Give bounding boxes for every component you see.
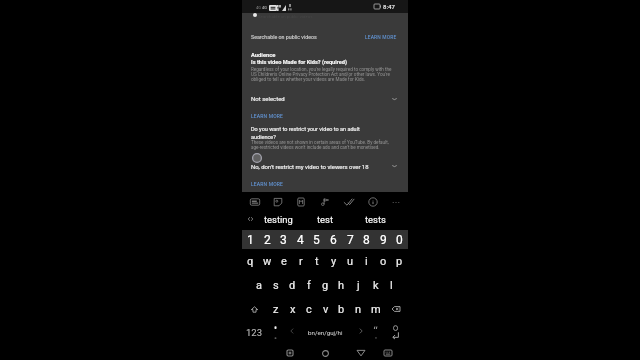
button[interactable]: t <box>308 250 325 272</box>
button[interactable]: r <box>292 250 309 272</box>
staticText: f <box>307 279 311 292</box>
button[interactable]: 6 <box>325 230 342 249</box>
staticText: g <box>322 279 329 292</box>
staticText: l <box>390 279 393 292</box>
button[interactable]: Grammar check <box>341 194 357 210</box>
button[interactable]: Settings <box>365 194 381 210</box>
staticText: o <box>380 255 387 268</box>
button[interactable]: test <box>302 211 348 228</box>
button[interactable]: d <box>284 274 301 296</box>
button[interactable]: tests <box>350 211 400 228</box>
button[interactable]: Recents <box>282 345 298 360</box>
button[interactable]: 0 <box>391 230 408 249</box>
staticText: e <box>281 255 287 268</box>
button[interactable]: More options <box>388 194 404 210</box>
button[interactable]: f <box>300 274 317 296</box>
staticText: Audience <box>251 52 276 59</box>
staticText: LEARN MORE <box>365 34 397 40</box>
button[interactable]: Switch keyboard <box>380 345 396 360</box>
staticText: 0 <box>396 233 403 247</box>
button[interactable]: Space <box>284 321 367 343</box>
button[interactable]: l <box>383 274 400 296</box>
button[interactable]: 7 <box>342 230 359 249</box>
staticText: 7 <box>347 233 354 247</box>
button[interactable]: w <box>259 250 276 272</box>
staticText: d <box>289 279 296 292</box>
button[interactable]: 3 <box>275 230 292 249</box>
staticText: Regardless of your location, you're lega… <box>251 67 397 82</box>
button[interactable]: testing <box>254 211 302 228</box>
button[interactable]: Searchable on public videos <box>242 30 408 45</box>
button[interactable]: u <box>342 250 359 272</box>
staticText: c <box>306 303 312 316</box>
staticText: p <box>396 255 403 268</box>
staticText: m <box>371 303 381 316</box>
staticText: bn/en/guj/hi <box>308 329 343 336</box>
staticText: r <box>299 255 303 268</box>
button[interactable]: Translate <box>293 194 309 210</box>
button[interactable]: i <box>358 250 375 272</box>
button[interactable]: Not selected <box>242 91 408 107</box>
button[interactable]: p <box>391 250 408 272</box>
button[interactable]: y <box>325 250 342 272</box>
staticText: Not selected <box>251 95 285 102</box>
staticText: No, don't restrict my video to viewers o… <box>251 163 369 170</box>
button[interactable]: v <box>317 298 334 320</box>
button[interactable]: Shift <box>242 298 267 320</box>
staticText: LEARN MORE <box>251 113 284 119</box>
button[interactable]: 2 <box>259 230 276 249</box>
button[interactable]: e <box>275 250 292 272</box>
button[interactable]: g <box>317 274 334 296</box>
button[interactable]: LEARN MORE <box>248 112 287 120</box>
button[interactable]: s <box>267 274 284 296</box>
staticText: 2 <box>264 233 271 247</box>
button[interactable]: m <box>367 298 384 320</box>
button[interactable]: Home <box>317 345 333 360</box>
button[interactable]: 123 <box>242 321 267 343</box>
staticText: v <box>323 303 329 316</box>
staticText: 123 <box>246 327 263 338</box>
staticText: 4 <box>297 233 304 247</box>
button[interactable]: Backspace <box>383 298 408 320</box>
button[interactable]: c <box>300 298 317 320</box>
button[interactable]: No, don't restrict my video to viewers o… <box>242 159 408 174</box>
button[interactable]: 4 <box>292 230 309 249</box>
staticText: z <box>273 303 279 316</box>
button[interactable]: 8 <box>358 230 375 249</box>
staticText: 4G <box>262 5 267 9</box>
staticText: q <box>247 255 254 268</box>
button[interactable]: h <box>333 274 350 296</box>
button[interactable]: 9 <box>375 230 392 249</box>
staticText: test <box>317 214 333 225</box>
button[interactable]: Comma <box>267 321 284 343</box>
button[interactable]: b <box>333 298 350 320</box>
button[interactable]: Clipboard <box>247 194 263 210</box>
button[interactable]: x <box>284 298 301 320</box>
staticText: 4G <box>256 5 261 9</box>
button[interactable]: o <box>375 250 392 272</box>
button[interactable]: Period <box>367 321 384 343</box>
button[interactable]: j <box>350 274 367 296</box>
staticText: 8 <box>363 233 370 247</box>
button[interactable]: Voice typing <box>317 194 333 210</box>
button[interactable]: Back <box>353 345 369 360</box>
staticText: testing <box>264 214 293 225</box>
staticText: These videos are not shown in certain ar… <box>251 140 397 150</box>
staticText: u <box>347 255 354 268</box>
button[interactable]: Stickers <box>270 194 286 210</box>
button[interactable]: k <box>367 274 384 296</box>
button[interactable]: Enter <box>383 321 408 343</box>
button[interactable]: n <box>350 298 367 320</box>
button[interactable]: a <box>250 274 267 296</box>
button[interactable]: q <box>242 250 259 272</box>
staticText: Do you want to restrict your video to an… <box>251 126 371 140</box>
staticText: Is this video Made for Kids? (required) <box>251 59 347 66</box>
button[interactable]: z <box>267 298 284 320</box>
button[interactable]: 5 <box>308 230 325 249</box>
staticText: n <box>355 303 362 316</box>
button[interactable]: LEARN MORE <box>248 180 287 188</box>
button[interactable]: Expand suggestions <box>244 213 256 225</box>
staticText: i <box>365 255 368 268</box>
button[interactable]: 1 <box>242 230 259 249</box>
